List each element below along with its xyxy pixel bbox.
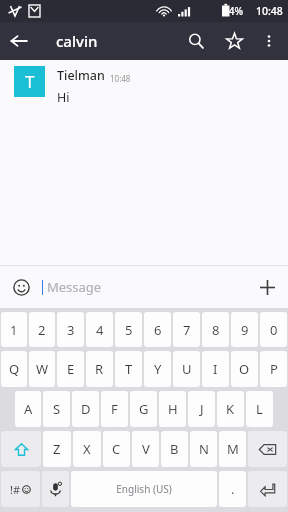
button[interactable]: M [219,431,246,467]
button[interactable]: English (US) [71,471,217,507]
button[interactable]: T [14,66,45,97]
staticText: G [139,400,149,418]
staticText: T [125,360,133,378]
button[interactable]: 4 [86,312,113,347]
button[interactable]: Shift [1,431,41,467]
button[interactable]: 9 [231,312,258,347]
button[interactable]: 2 [29,312,55,347]
staticText: A [24,400,33,418]
staticText: Hi [57,89,70,106]
button[interactable]: G [130,391,157,427]
button[interactable]: E [57,351,84,387]
button[interactable]: Favorite [215,22,253,60]
staticText: F [111,400,118,418]
button[interactable]: Voice input [42,471,69,507]
button[interactable]: Enter [248,471,287,507]
button[interactable]: D [72,391,99,427]
button[interactable]: Search [177,22,215,60]
button[interactable]: Backspace [248,431,287,467]
button[interactable]: N [190,431,217,467]
staticText: V [142,440,150,458]
staticText: 1 [10,321,18,339]
button[interactable]: S [43,391,70,427]
staticText: 3 [67,321,75,339]
staticText: 2 [38,321,46,339]
staticText: L [256,400,263,418]
staticText: !# [10,482,21,497]
staticText: O [239,360,250,378]
button[interactable]: Y [144,351,171,387]
button[interactable]: X [73,431,101,467]
button[interactable]: K [217,391,244,427]
staticText: 10:48 [256,4,283,18]
staticText: 84% [223,4,243,18]
staticText: M [227,440,239,458]
button[interactable]: 7 [173,312,200,347]
staticText: J [200,400,204,418]
staticText: 8 [212,321,220,339]
button[interactable]: . [219,471,246,507]
button[interactable]: Z [43,431,71,467]
staticText: 10:48 [110,73,131,84]
button[interactable]: Symbols [1,471,40,507]
staticText: C [112,440,121,458]
staticText: 9 [241,321,249,339]
button[interactable]: I [202,351,229,387]
staticText: D [81,400,91,418]
staticText: 7 [183,321,191,339]
button[interactable]: H [159,391,186,427]
button[interactable]: W [29,351,55,387]
staticText: 4 [96,321,104,339]
button[interactable]: O [231,351,258,387]
staticText: Y [154,360,162,378]
button[interactable]: A [15,391,41,427]
button[interactable]: V [132,431,159,467]
button[interactable]: 5 [115,312,142,347]
staticText: X [83,440,91,458]
staticText: . [231,480,235,498]
button[interactable]: 8 [202,312,229,347]
button[interactable]: L [246,391,273,427]
staticText: calvin [56,31,98,51]
button[interactable]: Message [47,266,246,308]
staticText: I [213,360,218,378]
button[interactable]: C [103,431,130,467]
staticText: S [53,400,61,418]
button[interactable]: 1 [1,312,27,347]
staticText: Tielman [57,67,105,84]
button[interactable]: B [161,431,188,467]
staticText: N [199,440,209,458]
button[interactable]: 0 [260,312,287,347]
button[interactable]: Attach [246,266,288,308]
staticText: Message [47,278,102,296]
button[interactable]: 3 [57,312,84,347]
staticText: Z [53,440,61,458]
staticText: R [95,360,104,378]
button[interactable]: 6 [144,312,171,347]
staticText: U [182,360,192,378]
button[interactable]: R [86,351,113,387]
button[interactable]: T [115,351,142,387]
button[interactable]: Q [1,351,27,387]
button[interactable]: Emoji [0,266,42,308]
staticText: H [168,400,178,418]
staticText: English (US) [116,482,172,496]
button[interactable]: U [173,351,200,387]
staticText: Q [9,360,20,378]
button[interactable]: More options [253,25,285,57]
staticText: E [67,360,75,378]
staticText: B [170,440,179,458]
staticText: W [36,360,49,378]
button[interactable]: F [101,391,128,427]
staticText: P [270,360,278,378]
staticText: 0 [270,321,278,339]
staticText: 6 [154,321,162,339]
button[interactable]: P [260,351,287,387]
staticText: K [226,400,235,418]
button[interactable]: Back [0,22,38,60]
staticText: 5 [125,321,133,339]
staticText: T [25,70,35,93]
button[interactable]: J [188,391,215,427]
